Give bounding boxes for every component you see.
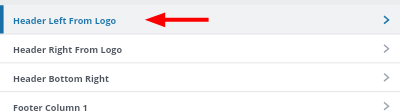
button[interactable]: Header Bottom Right (0, 63, 400, 92)
staticText: Header Right From Logo (13, 43, 123, 55)
other: Open Header Left From Logo (380, 5, 400, 34)
other: Open Footer Column 1 (380, 92, 400, 112)
staticText: Header Bottom Right (13, 72, 109, 84)
other: Open Header Right From Logo (380, 34, 400, 63)
button[interactable]: Footer Column 1 (0, 92, 400, 112)
staticText: Header Left From Logo (13, 14, 117, 26)
button[interactable]: Header Left From Logo (0, 5, 400, 34)
staticText: Footer Column 1 (13, 101, 88, 112)
other: Open Header Bottom Right (380, 63, 400, 92)
button[interactable]: Header Right From Logo (0, 34, 400, 63)
